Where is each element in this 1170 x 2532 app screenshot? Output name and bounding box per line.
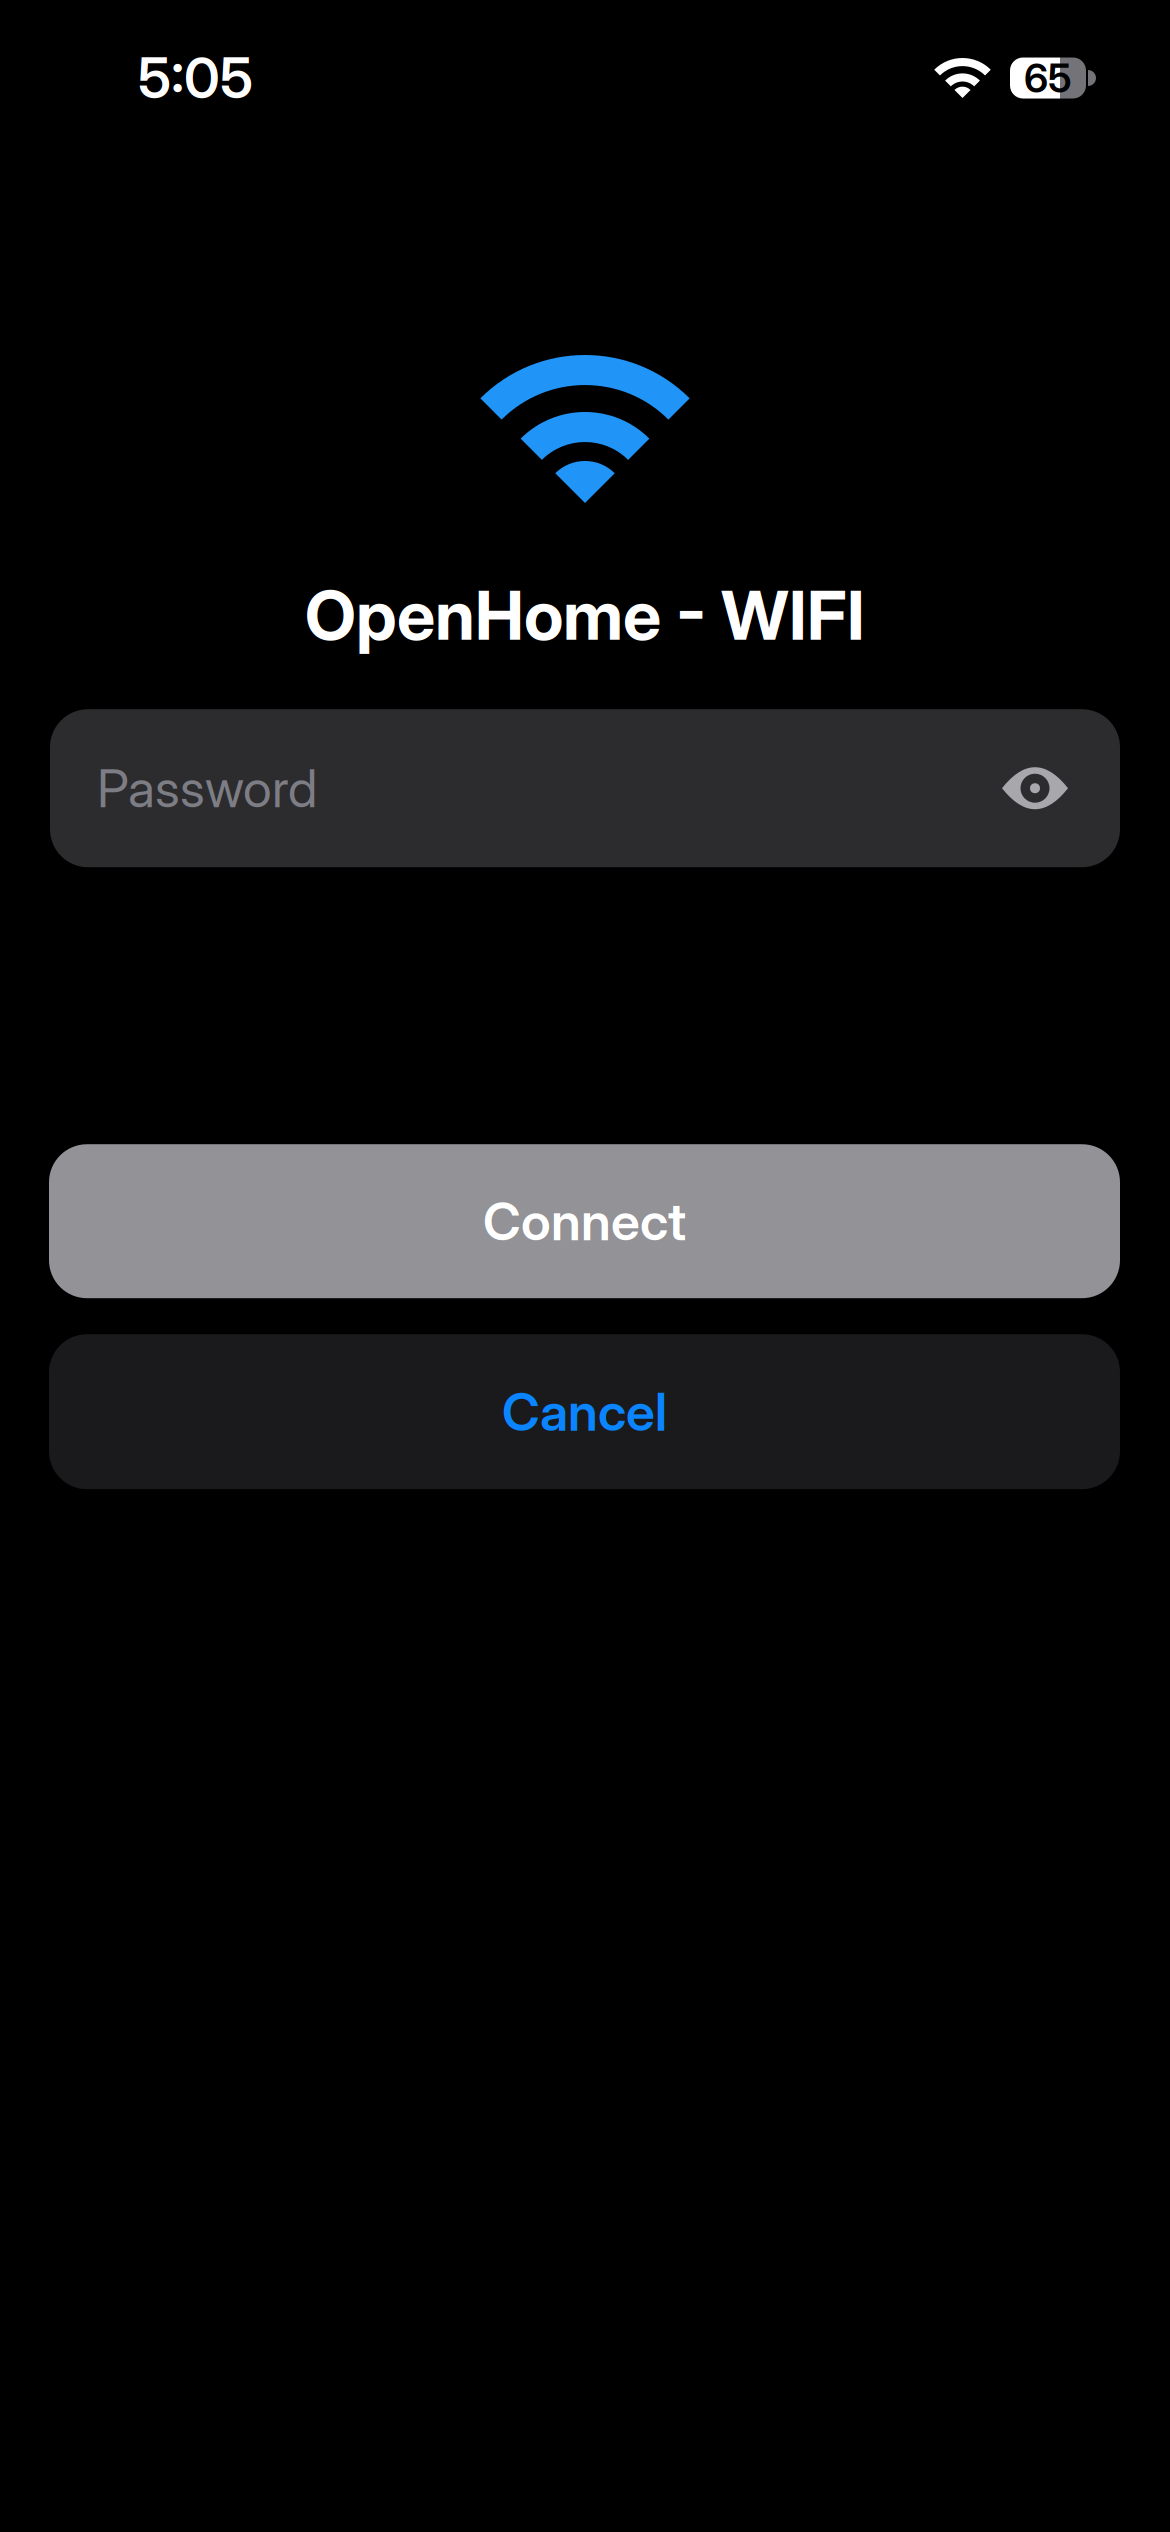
staticText: 5:05	[138, 45, 253, 111]
staticText: Password	[97, 757, 317, 819]
staticText: Cancel	[502, 1381, 667, 1442]
staticText: Connect	[483, 1190, 686, 1252]
staticText: 65	[1024, 54, 1072, 102]
staticText: OpenHome - WIFI	[305, 575, 865, 655]
